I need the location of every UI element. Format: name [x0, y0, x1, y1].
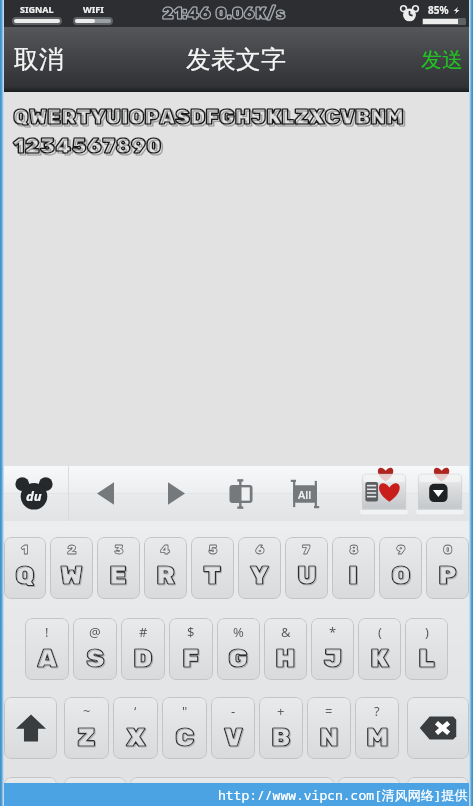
staticText: P [439, 561, 458, 593]
staticText: W [61, 561, 84, 593]
staticText: S [86, 643, 105, 675]
button[interactable]: ! [25, 618, 69, 680]
staticText: D [134, 644, 154, 676]
button[interactable]: Select text [208, 466, 273, 521]
button[interactable]: Select all [273, 466, 337, 521]
staticText: http://www.vipcn.com[清风网络]提供 [218, 786, 468, 804]
staticText: A [38, 644, 59, 676]
button[interactable]: 5 [191, 537, 234, 599]
staticText: H [276, 644, 297, 676]
button[interactable]: Move cursor right [143, 466, 208, 521]
staticText: X [127, 723, 147, 755]
button[interactable]: 取消 [14, 27, 64, 92]
button[interactable]: # [121, 618, 165, 680]
button[interactable]: 3 [97, 537, 140, 599]
button[interactable]: Space [130, 777, 334, 806]
staticText: U [298, 561, 318, 593]
staticText: ‘ [134, 702, 137, 720]
staticText: * [329, 623, 337, 641]
button[interactable]: % [217, 618, 260, 680]
staticText: 发送 [421, 47, 463, 73]
staticText: 5 [208, 542, 218, 558]
button[interactable]: 1 [4, 537, 46, 599]
staticText: " [182, 702, 188, 720]
staticText: ! [45, 623, 49, 641]
button[interactable]: 2 [50, 537, 93, 599]
button[interactable]: ) [405, 618, 448, 680]
staticText: G [228, 643, 249, 675]
staticText: C [176, 723, 196, 755]
button[interactable]: 0 [426, 537, 469, 599]
staticText: SIGNAL [20, 3, 54, 15]
staticText: N [320, 723, 340, 755]
button[interactable]: ( [358, 618, 401, 680]
staticText: Q [16, 561, 36, 593]
button[interactable]: * [311, 618, 354, 680]
staticText: L [419, 644, 436, 676]
staticText: & [281, 623, 291, 641]
button[interactable]: Symbols [4, 777, 57, 806]
staticText: D [133, 643, 153, 675]
staticText: - [231, 702, 236, 720]
staticText: 3 [114, 542, 124, 558]
button[interactable]: - [211, 697, 255, 759]
button[interactable]: Enter [407, 777, 469, 806]
staticText: E [110, 561, 129, 593]
staticText: L [418, 643, 435, 675]
staticText: du [26, 487, 42, 505]
staticText: G [229, 644, 250, 676]
button[interactable]: + [259, 697, 303, 759]
staticText: F [182, 643, 200, 675]
staticText: QWERTYUIOPASDFGHJKLZXCVBNM [15, 106, 406, 132]
button[interactable]: Baidu input method [0, 466, 68, 521]
staticText: R [156, 560, 176, 592]
button[interactable]: 发送 [421, 27, 463, 92]
staticText: = [325, 702, 333, 720]
staticText: Z [77, 722, 96, 754]
button[interactable]: 4 [144, 537, 187, 599]
button[interactable]: & [264, 618, 307, 680]
button[interactable]: = [307, 697, 351, 759]
button[interactable]: Comma [64, 777, 126, 806]
staticText: $ [187, 623, 195, 641]
button[interactable]: @ [73, 618, 117, 680]
staticText: A [37, 643, 58, 675]
staticText: 6 [255, 542, 265, 558]
button[interactable]: Period [338, 777, 400, 806]
button[interactable]: 6 [238, 537, 281, 599]
button[interactable]: 8 [332, 537, 375, 599]
staticText: B [272, 723, 292, 755]
button[interactable]: ‘ [113, 697, 158, 759]
staticText: B [271, 722, 291, 754]
button[interactable]: $ [169, 618, 213, 680]
staticText: QWERTYUIOPASDFGHJKLZXCVBNM [13, 104, 404, 130]
button[interactable]: Move cursor left [69, 466, 143, 521]
staticText: O [391, 560, 411, 592]
button[interactable]: Shift [4, 697, 57, 759]
staticText: T [203, 560, 222, 592]
staticText: I [349, 561, 360, 593]
staticText: Y [250, 560, 269, 592]
button[interactable]: Hide keyboard [412, 466, 468, 521]
staticText: F [183, 644, 201, 676]
staticText: S [87, 644, 106, 676]
staticText: 发表文字 [186, 44, 286, 75]
staticText: ~ [83, 702, 91, 720]
button[interactable]: ~ [64, 697, 109, 759]
staticText: 取消 [14, 44, 64, 75]
button[interactable]: 9 [379, 537, 422, 599]
button[interactable]: ? [355, 697, 399, 759]
staticText: 8 [349, 542, 359, 558]
staticText: 21:46 0.06K/s [162, 4, 286, 24]
staticText: ( [378, 623, 382, 641]
staticText: 1234567890 [13, 133, 161, 159]
staticText: + [277, 702, 285, 720]
button[interactable]: " [162, 697, 207, 759]
staticText: E [109, 560, 128, 592]
staticText: 9 [396, 542, 406, 558]
button[interactable]: 7 [285, 537, 328, 599]
button[interactable]: Theme store [356, 466, 412, 521]
button[interactable]: Backspace [407, 697, 469, 759]
staticText: U [297, 560, 317, 592]
staticText: J [323, 643, 343, 675]
